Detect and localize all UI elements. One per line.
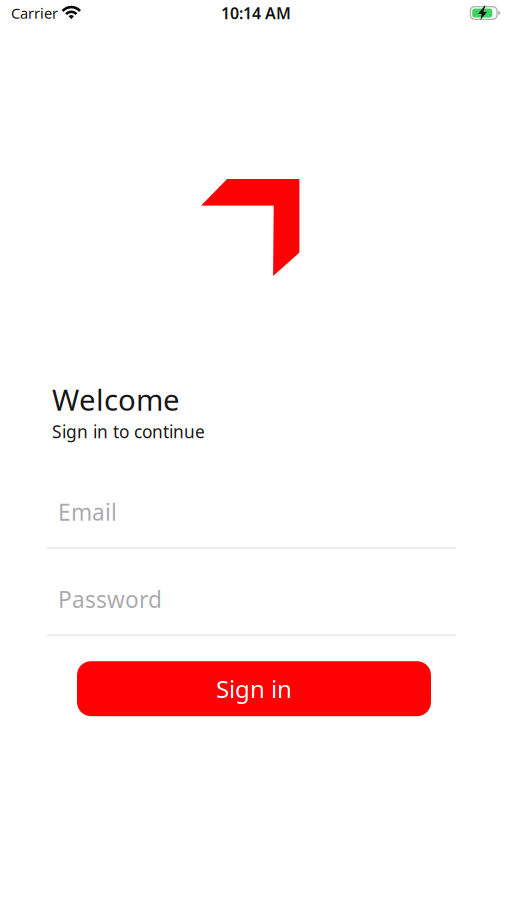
- staticText: Email: [58, 497, 117, 527]
- button[interactable]: Email: [47, 497, 456, 549]
- staticText: Carrier: [11, 3, 58, 23]
- staticText: Welcome: [52, 380, 180, 419]
- button[interactable]: Sign in: [77, 661, 431, 716]
- button[interactable]: Password: [47, 584, 456, 636]
- staticText: Sign in: [216, 673, 292, 705]
- staticText: 10:14 AM: [221, 2, 291, 24]
- staticText: Sign in to continue: [52, 420, 205, 443]
- staticText: Password: [58, 584, 162, 614]
